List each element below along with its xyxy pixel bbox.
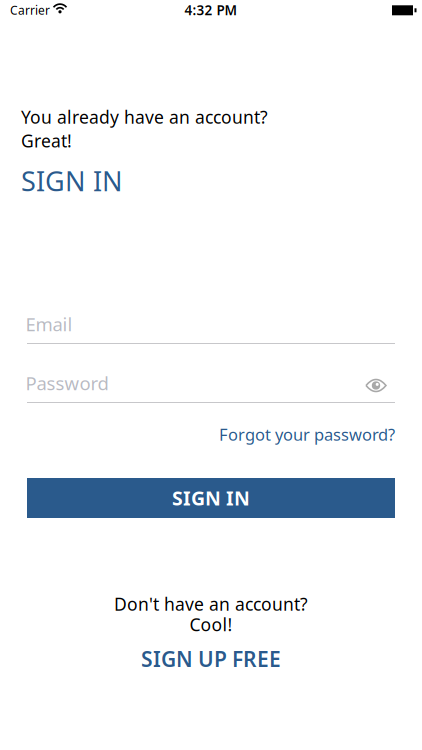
staticText: SIGN IN bbox=[21, 162, 123, 199]
staticText: SIGN UP FREE bbox=[141, 644, 281, 673]
staticText: Forgot your password? bbox=[219, 423, 395, 445]
staticText: Password bbox=[25, 370, 108, 396]
staticText: You already have an account? Great! bbox=[21, 105, 268, 153]
staticText: SIGN IN bbox=[172, 485, 250, 511]
button[interactable]: SIGN IN bbox=[27, 478, 395, 518]
staticText: Cool! bbox=[189, 612, 232, 636]
staticText: 4:32 PM bbox=[184, 1, 237, 19]
staticText: Email bbox=[25, 311, 72, 337]
button[interactable]: Forgot your password? bbox=[219, 423, 395, 445]
staticText: Don't have an account? bbox=[114, 592, 308, 616]
button[interactable]: Show password bbox=[366, 379, 386, 392]
staticText: Carrier bbox=[10, 2, 50, 18]
button[interactable]: SIGN UP FREE bbox=[141, 644, 281, 673]
